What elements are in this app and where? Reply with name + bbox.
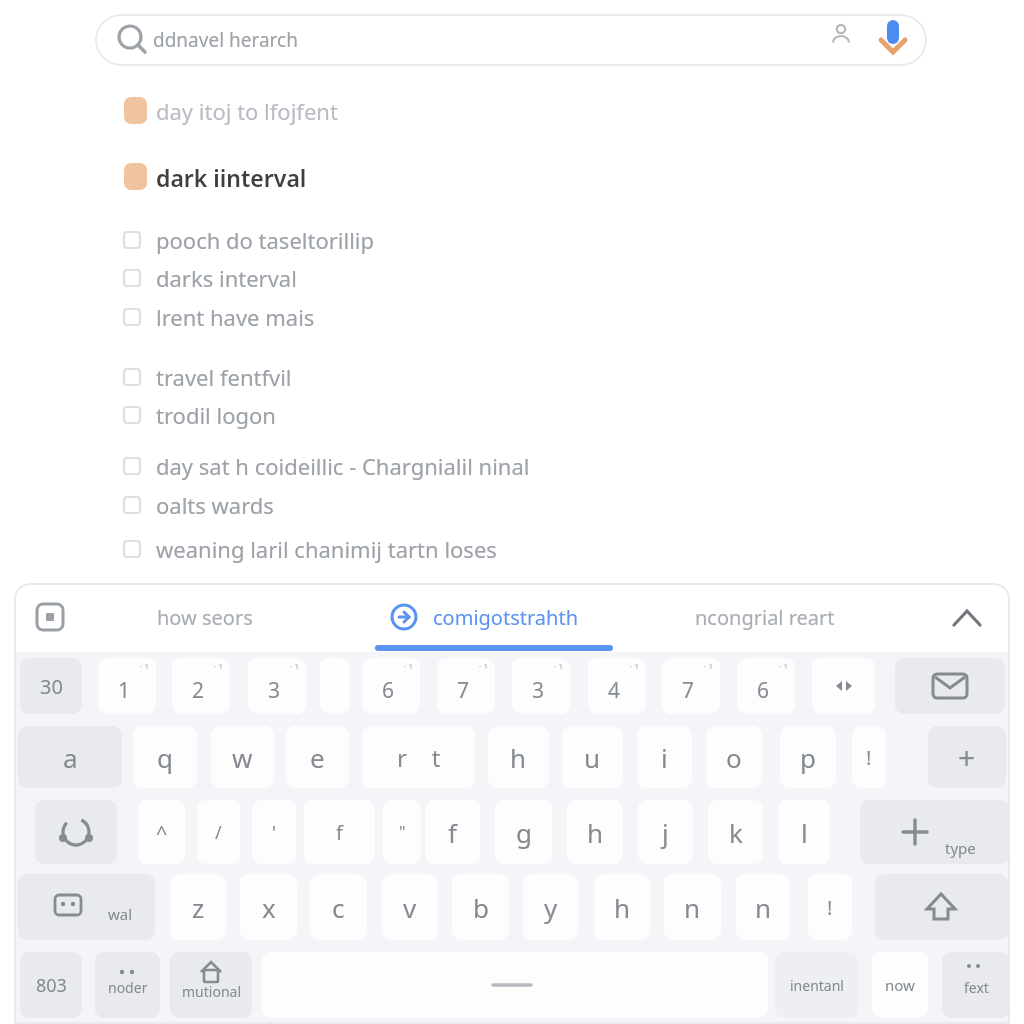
button[interactable]: dark iinterval (156, 161, 307, 193)
button[interactable] (875, 874, 1008, 940)
button[interactable]: h (488, 726, 549, 788)
button[interactable]: ncongrial reart (695, 601, 835, 633)
button[interactable]: i (637, 726, 692, 788)
button[interactable]: now (872, 952, 928, 1018)
staticText: 7 (682, 676, 695, 705)
button[interactable]: e (286, 726, 349, 788)
button[interactable]: p (780, 726, 836, 788)
button[interactable]: 30 (20, 658, 82, 714)
staticText: ' (272, 820, 277, 845)
button[interactable]: day sat h coideillic - Chargnialil ninal (156, 450, 530, 482)
staticText: 2 (192, 676, 205, 705)
staticText: pooch do taseltorillip (156, 225, 375, 255)
button[interactable] (775, 952, 858, 1018)
button[interactable] (262, 952, 768, 1018)
button[interactable] (895, 658, 1005, 714)
button[interactable]: r t (362, 726, 475, 788)
button[interactable]: 803 (20, 952, 82, 1018)
staticText: lrent have mais (156, 302, 315, 332)
staticText: e (310, 740, 325, 775)
staticText: 3 (268, 676, 281, 705)
staticText: b (473, 890, 489, 925)
button[interactable]: / (197, 800, 240, 864)
button[interactable]: f (425, 800, 480, 864)
button[interactable] (812, 658, 875, 714)
staticText: comigotstrahth (433, 604, 578, 631)
button[interactable]: " (383, 800, 421, 864)
button[interactable]: w (211, 726, 274, 788)
button[interactable]: travel fentfvil (156, 361, 292, 393)
button[interactable]: z (170, 874, 226, 940)
staticText: travel fentfvil (156, 362, 292, 392)
button[interactable]: how seors (150, 601, 260, 633)
button[interactable]: darks interval (156, 262, 297, 294)
button[interactable]: 6 (737, 658, 795, 714)
button[interactable]: x (240, 874, 297, 940)
button[interactable]: 6 (362, 658, 420, 714)
staticText: weaning laril chanimij tartn loses (156, 534, 497, 564)
button[interactable]: o (706, 726, 762, 788)
staticText: ncongrial reart (695, 604, 835, 631)
staticText: f (336, 819, 343, 846)
staticText: ˙ ¹ (214, 662, 223, 677)
button[interactable]: pooch do taseltorillip (156, 224, 375, 256)
button[interactable]: ' (252, 800, 296, 864)
staticText: ˙ ¹ (479, 662, 488, 677)
button[interactable] (35, 800, 117, 864)
button[interactable]: 2 (172, 658, 230, 714)
button[interactable] (18, 874, 155, 940)
button[interactable]: n (664, 874, 721, 940)
staticText: k (729, 815, 743, 850)
staticText: g (516, 815, 532, 850)
staticText: h (614, 890, 631, 925)
button[interactable]: 3 (512, 658, 570, 714)
button[interactable] (95, 952, 160, 1018)
button[interactable]: f (304, 800, 375, 864)
button[interactable]: n (736, 874, 790, 940)
button[interactable]: oalts wards (156, 489, 274, 521)
staticText: 3 (532, 676, 545, 705)
button[interactable]: 7 (437, 658, 495, 714)
button[interactable] (942, 952, 1010, 1018)
button[interactable]: c (310, 874, 367, 940)
button[interactable] (170, 952, 252, 1018)
button[interactable]: g (495, 800, 552, 864)
staticText: day sat h coideillic - Chargnialil ninal (156, 451, 530, 481)
button[interactable]: h (567, 800, 623, 864)
staticText: day itoj to lfojfent (156, 96, 338, 126)
button[interactable]: trodil logon (156, 399, 276, 431)
button[interactable]: 1 (98, 658, 156, 714)
button[interactable]: u (562, 726, 623, 788)
staticText: fext (964, 978, 989, 997)
button[interactable]: b (452, 874, 509, 940)
button[interactable]: comigotstrahth (430, 601, 580, 633)
staticText: ˙ ¹ (140, 662, 149, 677)
button[interactable]: + (928, 726, 1006, 788)
button[interactable]: ^ (138, 800, 185, 864)
button[interactable]: j (638, 800, 693, 864)
staticText: ! (827, 894, 833, 921)
button[interactable]: ddnavel herarch (95, 14, 927, 66)
button[interactable]: day itoj to lfojfent (156, 95, 338, 127)
button[interactable]: l (778, 800, 830, 864)
staticText: oalts wards (156, 490, 274, 520)
staticText: inentanl (790, 976, 844, 995)
button[interactable]: 7 (662, 658, 720, 714)
button[interactable]: k (708, 800, 763, 864)
button[interactable]: 3 (248, 658, 306, 714)
staticText: z (192, 890, 205, 925)
button[interactable]: ! (808, 874, 852, 940)
staticText: 1 (118, 676, 131, 705)
button[interactable]: lrent have mais (156, 301, 315, 333)
button[interactable]: ! (852, 726, 886, 788)
button[interactable]: 4 (588, 658, 646, 714)
button[interactable]: weaning laril chanimij tartn loses (156, 533, 497, 565)
button[interactable]: v (382, 874, 438, 940)
button[interactable]: q (133, 726, 197, 788)
staticText: j (662, 815, 669, 850)
button[interactable]: a (18, 726, 122, 788)
button[interactable] (860, 800, 1010, 864)
button[interactable]: y (523, 874, 578, 940)
button[interactable]: h (594, 874, 650, 940)
